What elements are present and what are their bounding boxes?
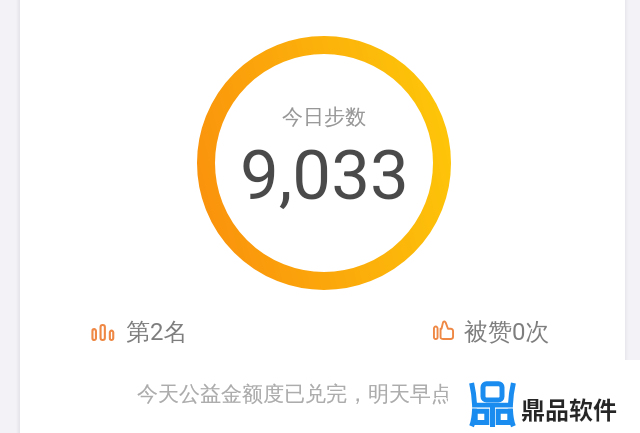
other: Likes [433,321,454,340]
button[interactable]: Ranking [91,317,188,347]
staticText: 9,033 [240,135,409,216]
other: Ranking [91,324,115,341]
button[interactable]: Likes [433,317,550,347]
staticText: 今日步数 [282,104,366,130]
staticText: 被赞0次 [464,317,550,347]
staticText: 今天公益金额度已兑完，明天早点来 [137,381,473,407]
staticText: 鼎品软件 [521,391,617,426]
staticText: 第2名 [126,317,188,347]
